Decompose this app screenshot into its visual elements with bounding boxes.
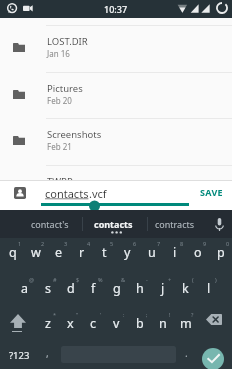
button[interactable]: t (93, 237, 116, 272)
staticText: % (98, 276, 103, 283)
staticText: 2 (41, 240, 45, 247)
button[interactable]: y (116, 237, 139, 272)
staticText: : (123, 311, 125, 318)
staticText: Screenshots (47, 128, 102, 141)
button[interactable]: g (105, 273, 128, 308)
staticText: w (31, 244, 41, 261)
button[interactable]: contact's (0, 210, 82, 238)
staticText: ) (215, 276, 217, 283)
staticText: Feb 20 (47, 95, 72, 106)
button[interactable]: s (36, 273, 59, 308)
staticText: TWRP (47, 175, 73, 188)
staticText: , (46, 346, 49, 360)
button[interactable]: Enter (194, 342, 232, 369)
button[interactable]: contracts (148, 210, 206, 238)
staticText: y (124, 244, 131, 261)
staticText: . (185, 346, 188, 360)
button[interactable]: e (47, 237, 70, 272)
staticText: .vcf (89, 186, 107, 201)
button[interactable]: Pictures (0, 72, 232, 119)
staticText: d (67, 280, 75, 297)
staticText: q (9, 244, 17, 261)
staticText: j (161, 280, 165, 297)
button[interactable]: c (82, 308, 105, 343)
staticText: 5 (110, 240, 114, 247)
staticText: s (45, 280, 51, 297)
button[interactable]: LOST.DIR (0, 25, 232, 72)
button[interactable] (57, 342, 178, 369)
staticText: Pictures (47, 82, 83, 95)
staticText: contracts (155, 218, 195, 230)
staticText: x (67, 315, 74, 332)
button[interactable]: j (151, 273, 174, 308)
staticText: n (159, 315, 167, 332)
staticText: - (146, 276, 148, 283)
button[interactable]: p (209, 237, 232, 272)
button[interactable]: , (38, 342, 57, 369)
button[interactable]: ?123 (0, 342, 38, 369)
button[interactable]: l (197, 273, 220, 308)
staticText: ?123 (9, 349, 30, 362)
button[interactable]: i (163, 237, 186, 272)
button[interactable]: u (140, 237, 163, 272)
staticText: SAVE (200, 186, 223, 198)
button[interactable]: SAVE (192, 180, 232, 210)
staticText: $ (76, 276, 80, 283)
staticText: " (76, 311, 79, 318)
staticText: i (173, 244, 177, 261)
button[interactable]: h (128, 273, 151, 308)
button[interactable]: w (24, 237, 47, 272)
button[interactable]: r (70, 237, 93, 272)
staticText: Feb 22 (47, 188, 72, 199)
button[interactable]: f (82, 273, 105, 308)
staticText: u (148, 244, 156, 261)
staticText: a (21, 280, 29, 297)
staticText: 0 (226, 240, 230, 247)
staticText: * (53, 311, 57, 318)
staticText: l (207, 280, 211, 297)
staticText: Feb 21 (47, 141, 72, 152)
staticText: LOST.DIR (47, 35, 88, 48)
button[interactable]: contacts (83, 210, 147, 238)
staticText: k (182, 280, 189, 297)
staticText: 7 (157, 240, 161, 247)
button[interactable]: Shift (0, 307, 35, 342)
button[interactable]: Contact (6, 180, 33, 210)
staticText: z (45, 315, 51, 332)
staticText: t (102, 244, 107, 261)
staticText: f (91, 280, 96, 297)
button[interactable]: a (13, 273, 36, 308)
button[interactable]: Screenshots (0, 118, 232, 165)
button[interactable]: z (36, 308, 59, 343)
button[interactable]: q (1, 237, 24, 272)
button[interactable]: x (59, 308, 82, 343)
staticText: + (168, 276, 172, 283)
button[interactable]: m (174, 308, 197, 343)
staticText: 3 (64, 240, 68, 247)
staticText: b (136, 315, 144, 332)
staticText: o (194, 244, 202, 261)
staticText: p (217, 244, 225, 261)
staticText: ; (146, 311, 148, 318)
staticText: @ (29, 276, 34, 283)
staticText: 4 (87, 240, 91, 247)
button[interactable]: Voice input (206, 210, 232, 238)
button[interactable]: v (105, 308, 128, 343)
staticText: ( (192, 276, 194, 283)
button[interactable]: k (174, 273, 197, 308)
staticText: r (79, 244, 85, 261)
button[interactable]: d (59, 273, 82, 308)
staticText: h (136, 280, 144, 297)
button[interactable]: n (151, 308, 174, 343)
staticText: & (121, 276, 126, 283)
staticText: contacts (94, 218, 133, 230)
button[interactable]: Backspace (199, 307, 232, 342)
staticText: c (90, 315, 97, 332)
staticText: 1 (18, 240, 22, 247)
button[interactable]: . (178, 342, 194, 369)
staticText: contacts (45, 186, 89, 201)
button[interactable]: TWRP (0, 165, 232, 212)
button[interactable]: b (128, 308, 151, 343)
button[interactable]: o (186, 237, 209, 272)
staticText: 9 (203, 240, 207, 247)
